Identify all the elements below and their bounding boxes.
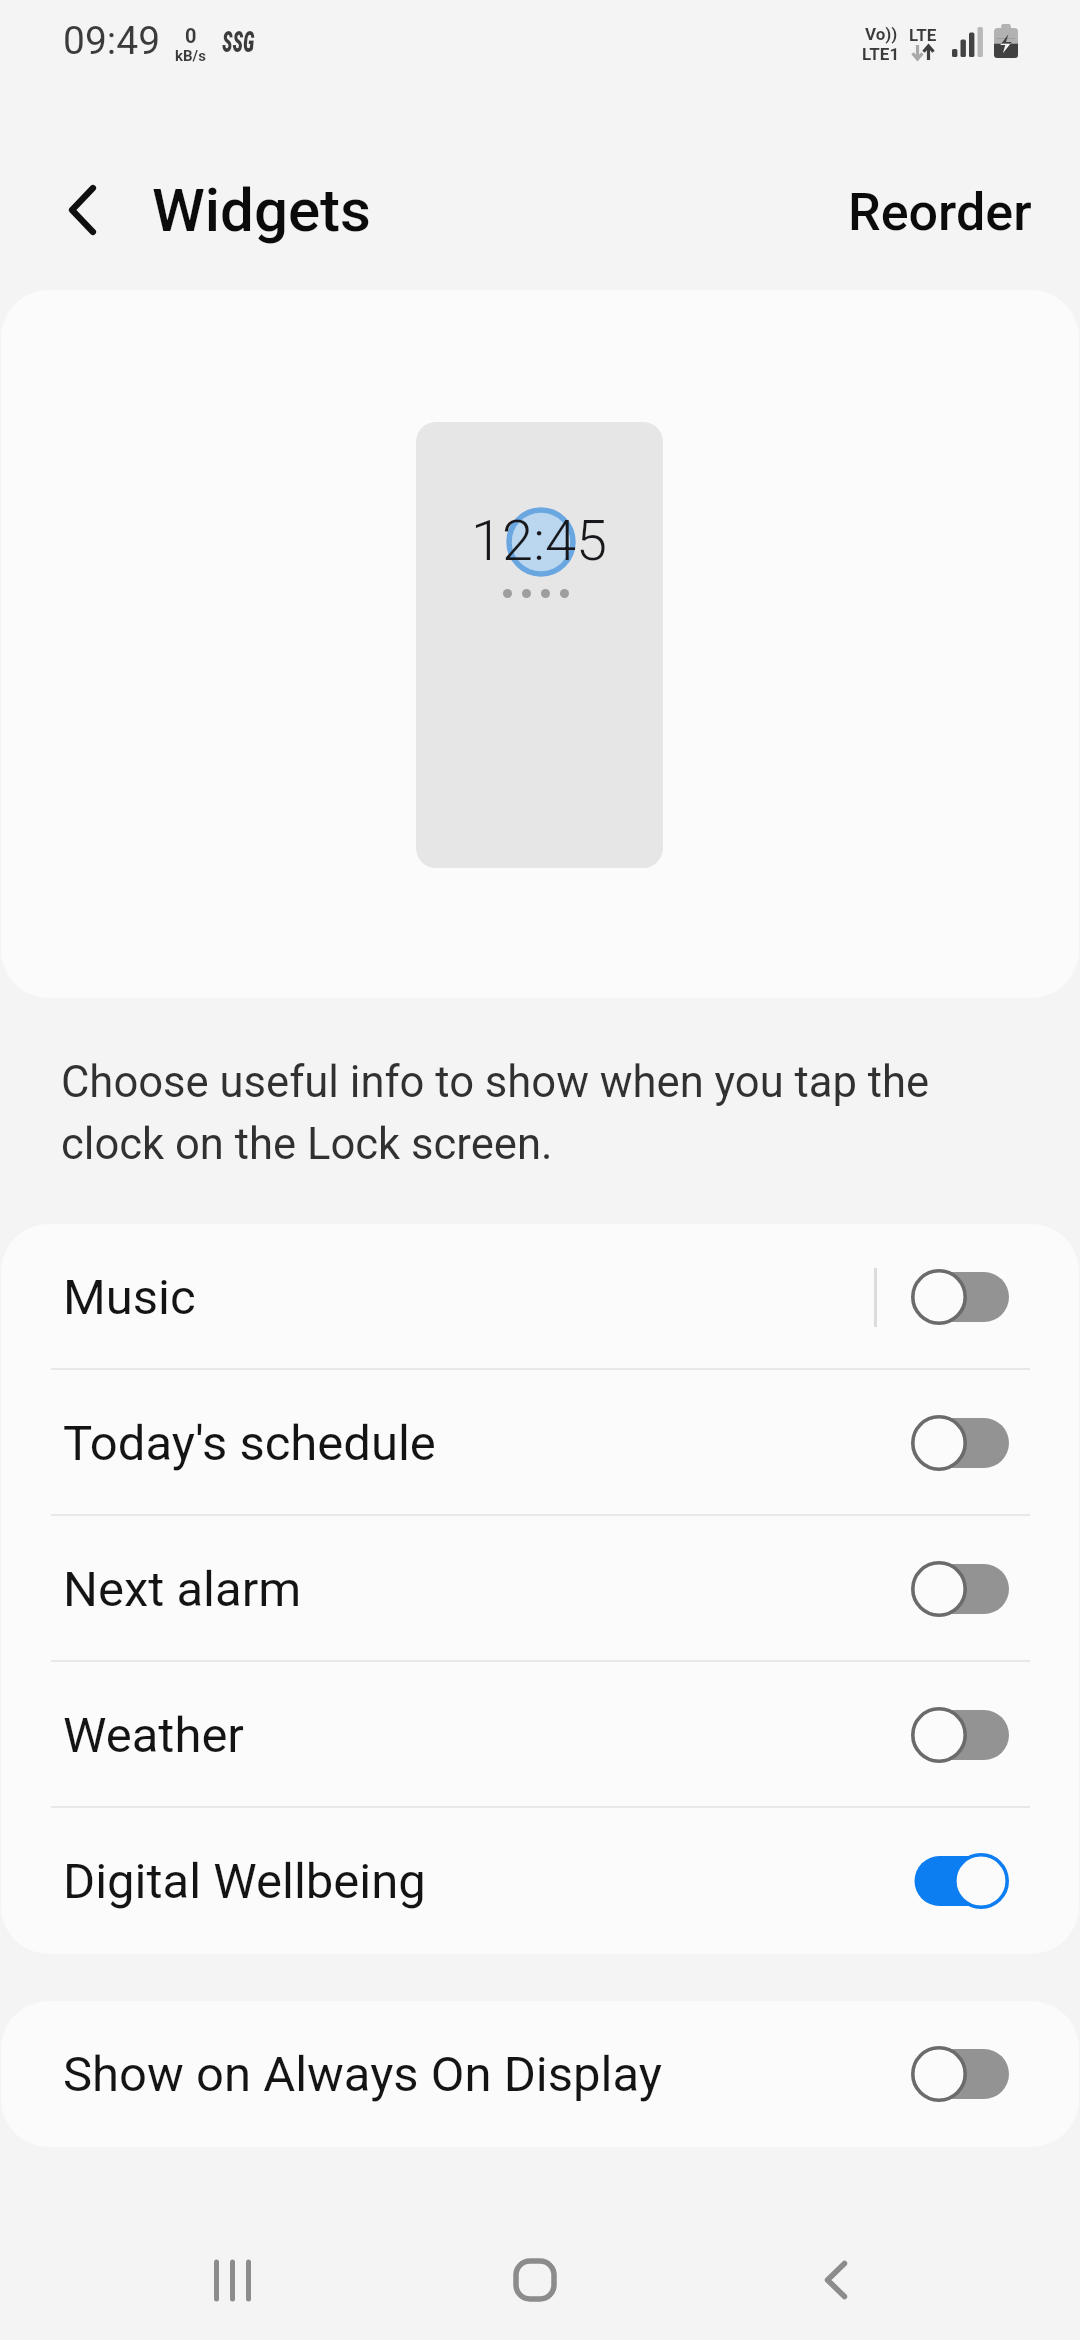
staticText: LTE <box>909 25 937 45</box>
staticText: 12:45 <box>471 508 608 574</box>
staticText: Show on Always On Display <box>63 2046 662 2103</box>
staticText: Vo)) <box>865 24 898 44</box>
staticText: 09:49 <box>63 18 161 64</box>
button[interactable]: Music, off <box>911 1267 1009 1327</box>
staticText: kB/s <box>175 47 206 65</box>
button[interactable]: Next alarm <box>1 1516 1079 1662</box>
button[interactable]: Next alarm, off <box>911 1559 1009 1619</box>
staticText: Weather <box>63 1707 244 1764</box>
button[interactable]: Weather, off <box>911 1705 1009 1765</box>
button[interactable]: Today's schedule <box>1 1370 1079 1516</box>
button[interactable]: Recent apps <box>142 2200 322 2340</box>
button[interactable]: Weather <box>1 1662 1079 1808</box>
staticText: SSG <box>222 25 255 59</box>
staticText: Today's schedule <box>63 1415 436 1472</box>
staticText: Choose useful info to show when you tap … <box>61 1048 930 1172</box>
button[interactable]: Back <box>746 2200 926 2340</box>
staticText: Reorder <box>848 182 1032 243</box>
staticText: Next alarm <box>63 1561 302 1618</box>
button[interactable]: Show on Always On Display, off <box>911 2044 1009 2104</box>
staticText: 0 <box>185 24 197 47</box>
button[interactable]: Show on Always On Display <box>1 2001 1079 2147</box>
button[interactable]: Music <box>1 1224 1079 1370</box>
button[interactable]: Today's schedule, off <box>911 1413 1009 1473</box>
button[interactable]: Reorder <box>822 152 1057 272</box>
staticText: Widgets <box>152 175 371 245</box>
staticText: Music <box>63 1269 196 1326</box>
staticText: LTE1 <box>862 44 900 64</box>
button[interactable]: Navigate up <box>27 133 137 287</box>
staticText: Digital Wellbeing <box>63 1853 426 1910</box>
button[interactable]: Home <box>445 2200 625 2340</box>
button[interactable]: Digital Wellbeing <box>1 1808 1079 1954</box>
button[interactable]: Digital Wellbeing, on <box>911 1851 1009 1911</box>
